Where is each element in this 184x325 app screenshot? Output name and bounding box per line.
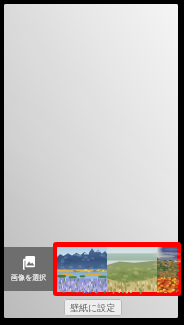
other: 画像を選択 (23, 256, 35, 270)
button[interactable] (57, 247, 177, 292)
button[interactable]: 壁紙に設定 (64, 299, 122, 316)
staticText: 壁紙に設定 (70, 302, 116, 313)
staticText: 画像を選択 (11, 273, 47, 282)
button[interactable]: 画像を選択 (4, 247, 53, 291)
